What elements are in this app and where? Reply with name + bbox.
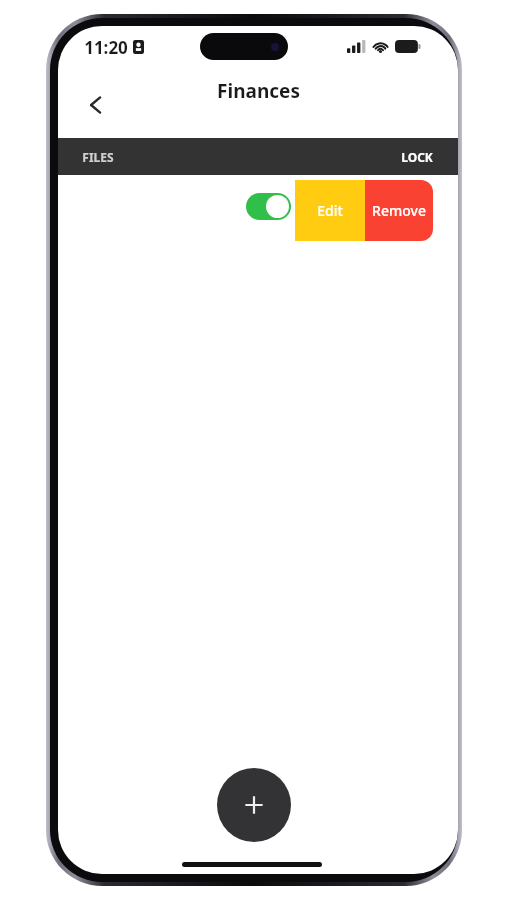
- staticText: LOCK: [401, 149, 433, 165]
- staticText: Remove: [372, 201, 426, 220]
- button[interactable]: Remove: [365, 180, 433, 241]
- button[interactable]: LOCK: [258, 138, 458, 175]
- button[interactable]: Add: [217, 768, 291, 842]
- button[interactable]: Back: [72, 82, 118, 128]
- staticText: 11:20: [84, 36, 128, 59]
- button[interactable]: Toggle: [246, 193, 291, 220]
- staticText: Edit: [317, 201, 343, 220]
- button[interactable]: Edit: [295, 180, 365, 241]
- staticText: FILES: [82, 149, 114, 165]
- staticText: Finances: [217, 78, 300, 104]
- button[interactable]: FILES: [58, 138, 258, 175]
